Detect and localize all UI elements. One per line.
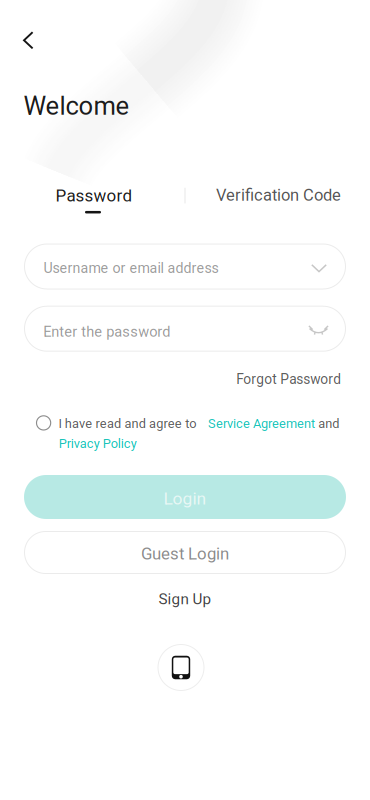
button[interactable]: Guest Login <box>24 531 346 574</box>
staticText: Password <box>55 186 132 206</box>
button[interactable]: Password <box>34 179 154 213</box>
staticText: Privacy Policy <box>59 436 137 451</box>
button[interactable]: Service Agreement <box>208 414 320 434</box>
staticText: Sign Up <box>158 590 211 608</box>
staticText: Login <box>163 488 206 509</box>
button[interactable]: Verification Code <box>203 178 353 212</box>
button[interactable]: Sign Up <box>125 586 245 612</box>
staticText: Welcome <box>23 91 129 121</box>
staticText: I have read and agree to <box>58 416 196 431</box>
button[interactable]: Choose account <box>304 253 334 283</box>
staticText: Verification Code <box>216 185 341 205</box>
staticText: Service Agreement <box>208 416 315 431</box>
staticText: and <box>318 416 339 431</box>
button[interactable]: Back <box>6 18 50 62</box>
button[interactable]: Login <box>24 475 346 519</box>
staticText: Username or email address <box>43 260 218 276</box>
staticText: Enter the password <box>43 323 170 340</box>
button[interactable]: Agree to terms <box>31 410 57 436</box>
button[interactable]: Sign in with phone <box>157 644 204 691</box>
staticText: Forgot Password <box>236 371 341 387</box>
button[interactable]: Privacy Policy <box>59 434 143 454</box>
button[interactable]: Forgot Password <box>24 368 341 390</box>
staticText: Guest Login <box>141 544 229 564</box>
button[interactable]: Show password <box>303 316 333 346</box>
